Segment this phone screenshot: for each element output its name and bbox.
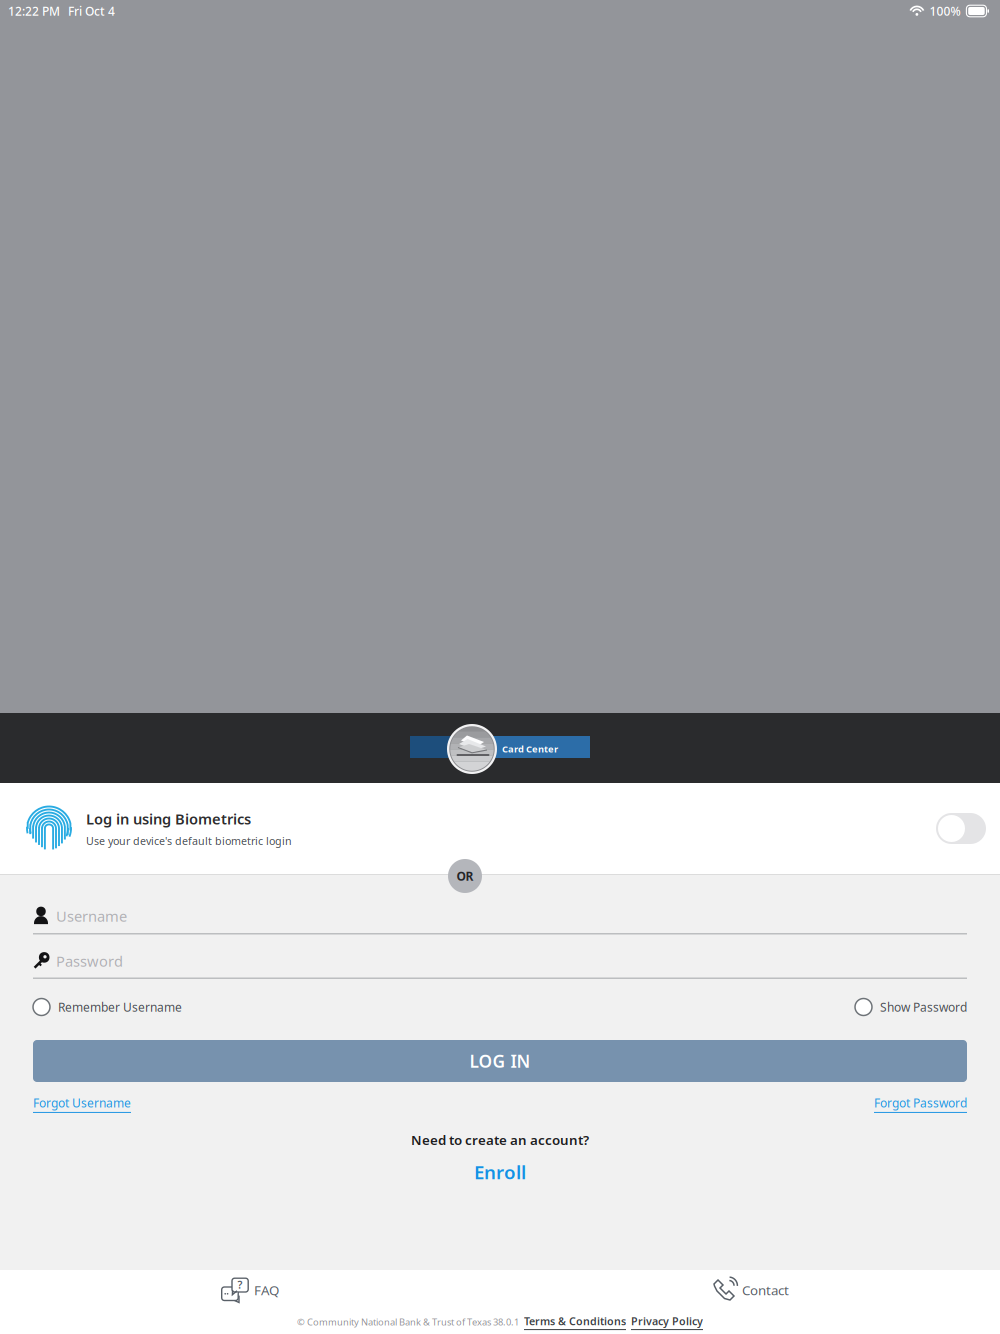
button[interactable]: Terms & Conditions	[524, 1314, 626, 1330]
staticText: Log in using Biometrics	[86, 809, 251, 829]
staticText: Need to create an account?	[411, 1131, 589, 1149]
staticText: LOG IN	[469, 1049, 530, 1072]
button[interactable]: Contact	[500, 1270, 1000, 1310]
button[interactable]: Username	[33, 899, 967, 934]
button[interactable]: Forgot Username	[33, 1095, 131, 1113]
staticText: Show Password	[880, 999, 967, 1015]
button[interactable]: Show Password	[855, 993, 967, 1021]
staticText: Card Center	[502, 743, 558, 755]
staticText: 12:22 PM	[8, 3, 60, 19]
staticText: Privacy Policy	[631, 1314, 703, 1328]
staticText: Forgot Username	[33, 1095, 131, 1111]
button[interactable]: ?	[0, 1270, 500, 1310]
staticText: Use your device's default biometric logi…	[86, 834, 292, 848]
staticText: OR	[456, 868, 473, 884]
staticText: © Community National Bank & Trust of Tex…	[297, 1316, 519, 1328]
staticText: ?	[237, 1277, 242, 1292]
button[interactable]: Password	[33, 944, 967, 979]
staticText: Fri Oct 4	[68, 3, 115, 19]
button[interactable]: Privacy Policy	[631, 1314, 703, 1330]
button[interactable]: Log in using Biometrics	[0, 783, 1000, 874]
staticText: 100%	[929, 3, 960, 19]
staticText: Contact	[742, 1281, 789, 1299]
staticText: Forgot Password	[874, 1095, 967, 1111]
button[interactable]: Remember Username	[33, 993, 182, 1021]
staticText: Password	[56, 951, 123, 971]
staticText: FAQ	[254, 1281, 279, 1299]
button[interactable]: Enroll	[474, 1149, 526, 1184]
staticText: Enroll	[474, 1160, 526, 1184]
button[interactable]: LOG IN	[33, 1040, 967, 1082]
button[interactable]: Forgot Password	[874, 1095, 967, 1113]
staticText: Terms & Conditions	[524, 1314, 626, 1328]
staticText: Remember Username	[58, 999, 182, 1015]
staticText: Username	[56, 906, 127, 926]
